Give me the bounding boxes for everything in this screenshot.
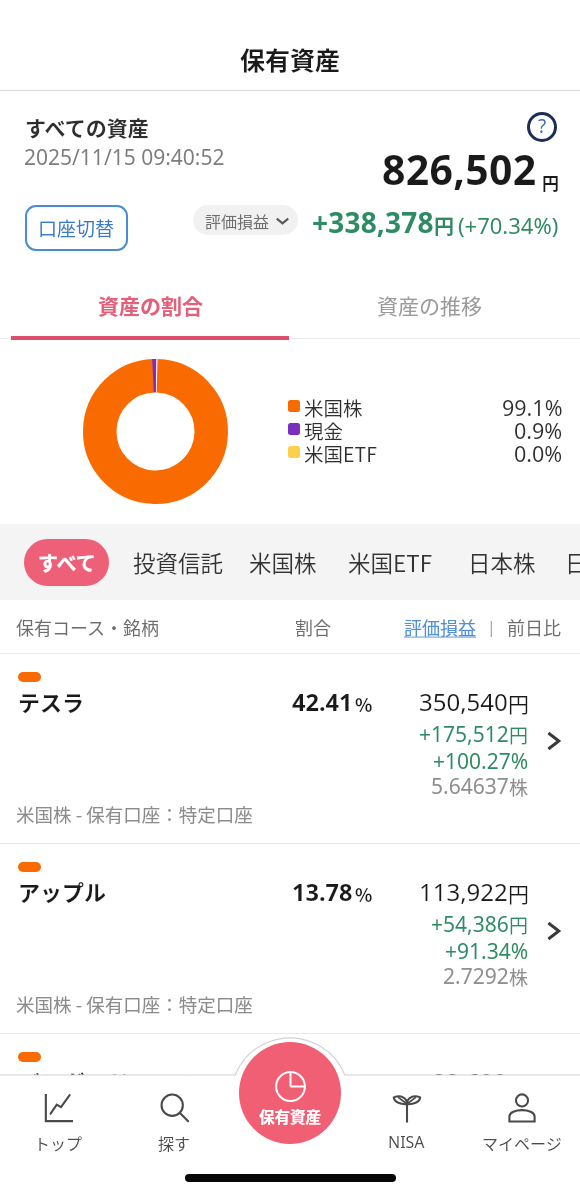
staticText: (+70.34%) <box>458 210 559 240</box>
button[interactable]: 口座切替 <box>25 205 128 251</box>
staticText: マイページ <box>482 1131 562 1154</box>
staticText: 円 <box>508 688 529 718</box>
button[interactable]: 米国株 <box>249 539 317 586</box>
button[interactable]: 評価損益 <box>404 614 476 640</box>
staticText: 日本株 <box>468 546 536 579</box>
staticText: 保有資産 <box>259 1105 322 1127</box>
staticText: 2.7292 <box>443 962 509 991</box>
staticText: 9.99 <box>292 1066 339 1098</box>
button[interactable]: すべて <box>24 539 109 586</box>
button[interactable]: トップ <box>0 1076 116 1200</box>
staticText: 米国株 <box>304 393 363 418</box>
button[interactable]: 保有資産 <box>239 1042 341 1144</box>
staticText: 円 <box>509 911 529 939</box>
staticText: +91.34% <box>445 937 529 966</box>
staticText: 保有コース・銘柄 <box>16 614 160 640</box>
staticText: +100.27% <box>433 747 529 776</box>
staticText: 米国株 - 保有口座：特定口座 <box>16 991 253 1018</box>
staticText: 保有資産 <box>240 41 341 77</box>
staticText: トップ <box>34 1131 83 1154</box>
button[interactable]: 評価損益 <box>193 205 298 235</box>
staticText: ? <box>538 113 547 139</box>
staticText: +54,386 <box>431 910 509 939</box>
staticText: 99.1% <box>502 393 563 418</box>
staticText: 円 <box>509 721 529 749</box>
staticText: +8.11% <box>457 1127 529 1156</box>
staticText: 株 <box>509 963 529 991</box>
staticText: % <box>341 1071 359 1097</box>
staticText: 113,922 <box>419 875 508 908</box>
staticText: % <box>355 881 373 907</box>
staticText: 現金 <box>304 416 344 441</box>
staticText: 円 <box>509 1101 529 1129</box>
button[interactable]: テスラ <box>0 654 580 843</box>
staticText: 0.9% <box>514 416 563 441</box>
staticText: 米国株 <box>249 546 317 579</box>
staticText: NISA <box>388 1131 425 1153</box>
staticText: 割合 <box>295 614 331 640</box>
button[interactable]: NISA <box>348 1076 464 1200</box>
staticText: 円 <box>508 878 529 908</box>
staticText: 米国ETF <box>304 439 377 464</box>
button[interactable]: アップル <box>0 844 580 1033</box>
button[interactable]: 投資信託 <box>133 539 224 586</box>
staticText: 円 <box>434 211 454 240</box>
staticText: % <box>355 691 373 717</box>
button[interactable]: ヘルプ <box>527 112 557 142</box>
button[interactable]: 資産の推移 <box>290 272 580 338</box>
staticText: 350,540 <box>419 685 508 718</box>
staticText: 42.41 <box>292 686 353 718</box>
staticText: すべて <box>38 548 96 577</box>
staticText: すべての資産 <box>25 112 149 142</box>
staticText: 口座切替 <box>38 214 115 242</box>
staticText: 資産の推移 <box>377 290 482 320</box>
staticText: +6,231 <box>443 1100 509 1129</box>
staticText: 評価損益 <box>205 209 270 232</box>
staticText: 5.64637 <box>431 772 509 801</box>
staticText: 米国株 - 保有口座：特定口座 <box>16 1181 253 1200</box>
button[interactable]: マイページ <box>464 1076 580 1200</box>
staticText: +175,512 <box>419 720 509 749</box>
staticText: 円 <box>508 1068 529 1098</box>
staticText: 日 <box>565 546 580 579</box>
button[interactable]: 米国ETF <box>348 539 433 586</box>
staticText: 円 <box>542 170 559 195</box>
staticText: アップル <box>18 875 107 907</box>
staticText: | <box>487 616 496 638</box>
staticText: 82,600 <box>432 1065 508 1098</box>
button[interactable]: 資産の割合 <box>0 272 290 338</box>
staticText: テスラ <box>18 685 85 717</box>
staticText: 資産の割合 <box>98 290 203 320</box>
staticText: 2025/11/15 09:40:52 <box>24 143 225 172</box>
staticText: 株 <box>509 773 529 801</box>
button[interactable]: 探す <box>116 1076 232 1200</box>
button[interactable]: 日本株 <box>468 539 536 586</box>
staticText: 米国株 - 保有口座：特定口座 <box>16 801 253 828</box>
staticText: 投資信託 <box>133 546 224 579</box>
button[interactable]: バンガード・エス <box>0 1034 580 1200</box>
staticText: バンガード・エス <box>18 1065 196 1097</box>
staticText: 探す <box>158 1131 191 1154</box>
button[interactable]: 前日比 <box>507 614 561 640</box>
staticText: +338,378 <box>312 203 434 241</box>
staticText: 826,502 <box>382 141 537 197</box>
staticText: 0.0% <box>514 439 563 464</box>
staticText: 米国ETF <box>348 546 433 579</box>
staticText: 13.78 <box>292 876 353 908</box>
button[interactable]: 日 <box>565 539 580 586</box>
